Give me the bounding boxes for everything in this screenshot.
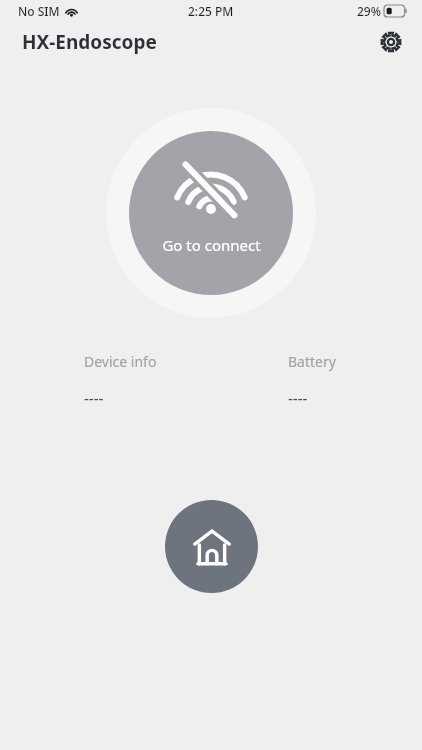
- staticText: 29%: [357, 3, 381, 19]
- staticText: No SIM: [18, 3, 60, 19]
- staticText: HX-Endoscope: [22, 29, 157, 55]
- button[interactable]: Settings: [374, 25, 408, 59]
- staticText: Go to connect: [162, 235, 261, 255]
- staticText: Battery: [288, 352, 336, 371]
- staticText: ----: [84, 388, 104, 408]
- staticText: 2:25 PM: [188, 3, 234, 19]
- staticText: ----: [288, 388, 308, 408]
- button[interactable]: Home: [165, 500, 258, 593]
- staticText: Device info: [84, 352, 157, 371]
- button[interactable]: Go to connect: [129, 131, 293, 295]
